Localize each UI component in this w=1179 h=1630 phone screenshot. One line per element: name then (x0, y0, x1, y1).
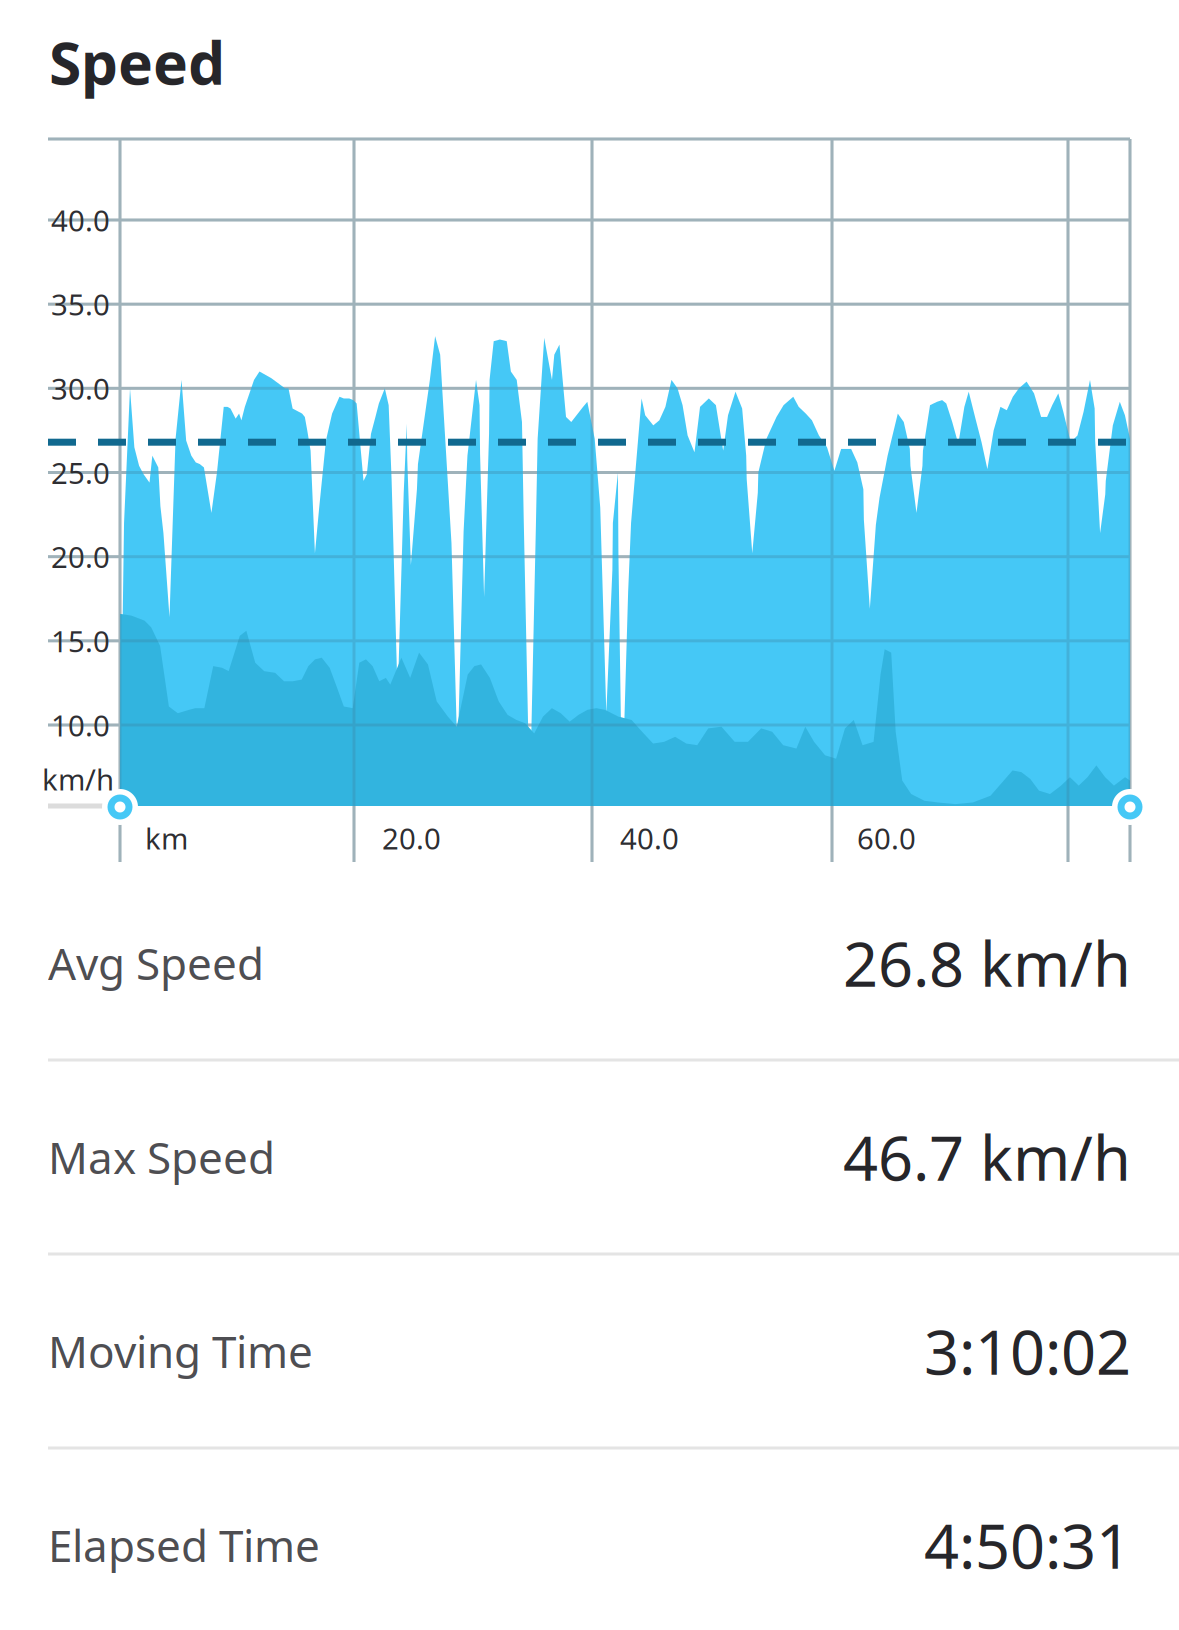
staticText: 35.0 (51, 285, 110, 324)
staticText: Moving Time (48, 1322, 313, 1380)
staticText: km (145, 818, 188, 857)
button[interactable]: Max Speed (0, 1060, 1179, 1254)
staticText: 4:50:31 (924, 1504, 1131, 1586)
staticText: km/h (42, 759, 114, 798)
staticText: 10.0 (51, 705, 110, 744)
staticText: Avg Speed (48, 934, 264, 992)
staticText: 20.0 (51, 537, 110, 576)
staticText: 40.0 (620, 818, 679, 857)
staticText: Speed (49, 23, 225, 101)
staticText: 20.0 (382, 818, 441, 857)
staticText: 40.0 (51, 200, 110, 239)
staticText: 60.0 (857, 818, 916, 857)
staticText: 15.0 (51, 621, 110, 660)
staticText: Max Speed (48, 1128, 275, 1186)
button[interactable]: Elapsed Time (0, 1448, 1179, 1630)
staticText: 30.0 (51, 369, 110, 408)
staticText: 46.7 km/h (843, 1116, 1131, 1198)
staticText: Elapsed Time (48, 1516, 320, 1574)
staticText: 3:10:02 (924, 1310, 1131, 1392)
button[interactable]: Moving Time (0, 1254, 1179, 1448)
staticText: 25.0 (51, 453, 110, 492)
staticText: 26.8 km/h (843, 922, 1131, 1004)
button[interactable]: Avg Speed (0, 866, 1179, 1060)
